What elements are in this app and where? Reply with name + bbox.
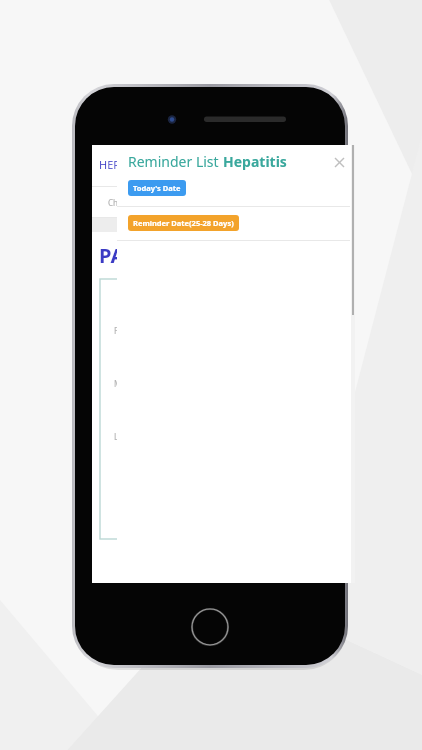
button[interactable]: Today's Date [128,180,186,196]
staticText: PATIENT [99,242,182,269]
button[interactable]: Close [331,154,347,170]
staticText: Today's Date [133,183,181,193]
staticText: First Name [114,325,155,336]
staticText: Hepatitis [223,152,287,171]
staticText: Last Name [114,431,155,442]
staticText: Choose Vaccine [108,197,167,208]
staticText: Reminder Date(25-28 Days) [133,218,234,228]
button[interactable]: Reminder Date(25-28 Days) [128,215,239,231]
staticText: Middle Name [114,378,165,389]
staticText: Reminder List [128,152,223,171]
staticText: HEPATITIS [99,157,152,172]
